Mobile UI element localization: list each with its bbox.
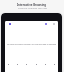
staticText: Without Leaving the App [18, 6, 47, 9]
button[interactable]: Menu [9, 23, 11, 25]
staticText: My hands are totally free and I can read… [6, 43, 57, 45]
staticText: Interactive Browsing [17, 3, 47, 7]
